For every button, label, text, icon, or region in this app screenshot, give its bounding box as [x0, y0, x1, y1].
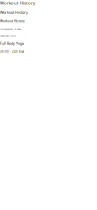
- staticText: NOVEMBER, 15 2024: [0, 27, 21, 31]
- staticText: 30:00 · 240 Kcal: [0, 50, 24, 53]
- staticText: NOVEMBER, 15 2024: [0, 34, 16, 37]
- staticText: Full Body Yoga: [0, 41, 24, 46]
- staticText: Workout History: [0, 0, 35, 6]
- staticText: Workout History: [0, 10, 28, 15]
- staticText: Workout History: [0, 19, 25, 23]
